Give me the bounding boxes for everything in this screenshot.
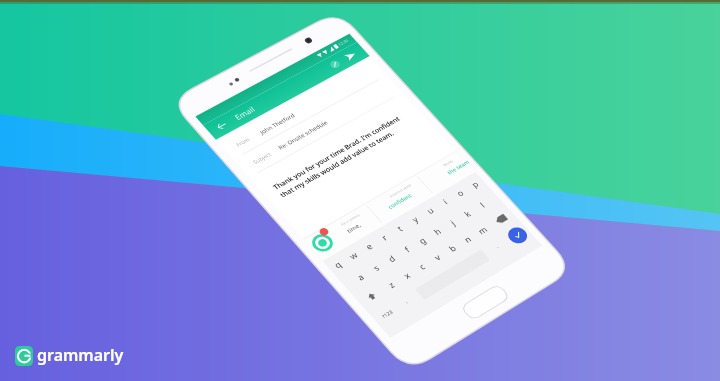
button[interactable]: Grammarly keyboard promo xyxy=(0,0,720,381)
